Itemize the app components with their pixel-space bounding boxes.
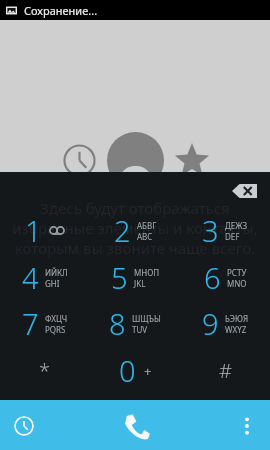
staticText: ABC <box>137 231 153 242</box>
staticText: Здесь будут отображаться избранные элеме… <box>10 198 260 258</box>
staticText: ДЕЖЗ <box>225 220 248 231</box>
staticText: Сохранение... <box>24 3 98 18</box>
staticText: ЬЭЮЯ <box>225 313 249 324</box>
staticText: WXYZ <box>225 324 247 335</box>
staticText: DEF <box>225 231 240 242</box>
button[interactable]: Recents <box>53 134 105 186</box>
staticText: 3 <box>202 211 219 250</box>
button[interactable]: Dialpad <box>90 402 180 450</box>
button[interactable]: * <box>0 348 90 392</box>
staticText: PQRS <box>45 324 66 335</box>
button[interactable]: # <box>180 348 270 392</box>
staticText: # <box>219 357 232 384</box>
button[interactable]: 7 <box>0 301 90 345</box>
staticText: * <box>39 357 51 384</box>
staticText: JKL <box>134 278 146 289</box>
staticText: МНОП <box>134 267 160 278</box>
button[interactable]: 5 <box>90 255 180 299</box>
button[interactable]: 3 <box>180 208 270 252</box>
button[interactable]: Backspace <box>226 178 262 204</box>
button[interactable]: 6 <box>180 255 270 299</box>
button[interactable]: 4 <box>0 255 90 299</box>
staticText: 7 <box>22 304 39 343</box>
button[interactable]: Call history <box>0 402 90 450</box>
button[interactable]: 1 <box>0 208 90 252</box>
button[interactable]: Contacts <box>105 130 165 190</box>
staticText: ФХЦЧ <box>45 313 68 324</box>
button[interactable]: 9 <box>180 301 270 345</box>
staticText: 6 <box>204 258 221 297</box>
staticText: 1 <box>25 211 42 250</box>
staticText: MNO <box>227 278 247 289</box>
button[interactable]: Favorites <box>166 134 218 186</box>
button[interactable]: 8 <box>90 301 180 345</box>
staticText: ИЙКЛ <box>45 267 68 278</box>
staticText: 4 <box>22 258 39 297</box>
button[interactable]: 2 <box>90 208 180 252</box>
staticText: 2 <box>114 211 131 250</box>
button[interactable]: More options <box>180 402 270 450</box>
staticText: 5 <box>111 258 128 297</box>
staticText: 8 <box>109 304 126 343</box>
staticText: АБВГ <box>137 220 157 231</box>
staticText: РСТУ <box>227 267 247 278</box>
staticText: ШЩЪЫ <box>132 313 161 324</box>
staticText: GHI <box>45 278 60 289</box>
staticText: 0 <box>119 351 136 390</box>
button[interactable]: 0 <box>90 348 180 392</box>
staticText: 9 <box>202 304 219 343</box>
staticText: + <box>144 362 152 380</box>
staticText: TUV <box>132 324 148 335</box>
